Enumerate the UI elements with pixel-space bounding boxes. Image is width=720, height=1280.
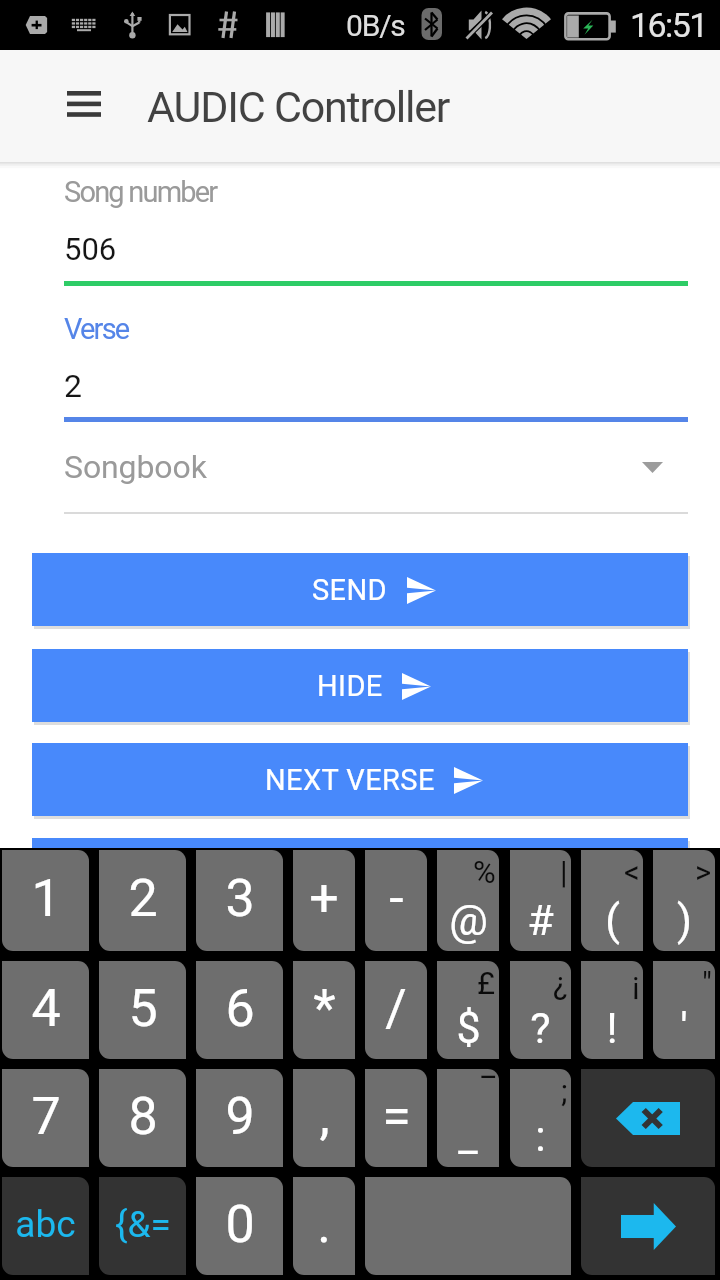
button[interactable]: /	[365, 961, 427, 1059]
staticText: ,	[319, 1086, 330, 1147]
staticText: Songbook	[64, 448, 207, 486]
button[interactable]: 4	[2, 961, 89, 1059]
button[interactable]: PREVIOUS VERSE	[32, 838, 688, 911]
staticText: %	[473, 854, 496, 890]
staticText: "	[702, 965, 712, 1001]
staticText: AUDIC Controller	[147, 82, 450, 132]
staticText: )	[677, 895, 692, 945]
staticText: #	[527, 895, 554, 945]
button[interactable]: Open navigation menu	[62, 84, 106, 128]
button[interactable]: {&=	[99, 1177, 186, 1275]
button[interactable]	[365, 1177, 571, 1275]
button[interactable]: <	[581, 850, 643, 951]
staticText: 506	[64, 231, 117, 267]
button[interactable]: Select songbook	[632, 446, 676, 490]
staticText: HIDE	[317, 669, 383, 703]
button[interactable]: 2	[99, 850, 186, 951]
button[interactable]: £	[437, 961, 499, 1059]
button[interactable]: >	[653, 850, 715, 951]
button[interactable]: ¿	[510, 961, 571, 1059]
staticText: @	[449, 895, 488, 945]
staticText: ¡	[632, 965, 640, 1001]
staticText: .	[317, 1194, 331, 1255]
staticText: Verse	[64, 312, 129, 346]
staticText: _	[458, 1111, 478, 1161]
button[interactable]: 9	[196, 1069, 283, 1167]
button[interactable]: ‾	[437, 1069, 499, 1167]
button[interactable]: =	[365, 1069, 427, 1167]
button[interactable]: 7	[2, 1069, 89, 1167]
button[interactable]: Backspace	[581, 1069, 715, 1167]
staticText: 3	[225, 868, 255, 929]
button[interactable]: "	[653, 961, 715, 1059]
staticText: 16:51	[630, 5, 707, 45]
staticText: *	[313, 978, 336, 1039]
staticText: +	[309, 868, 339, 929]
staticText: SEND	[312, 573, 388, 607]
staticText: {&=	[115, 1203, 171, 1246]
button[interactable]: 6	[196, 961, 283, 1059]
staticText: 1	[31, 868, 61, 929]
staticText: $	[456, 1003, 481, 1053]
staticText: 7	[31, 1086, 61, 1147]
button[interactable]: HIDE	[32, 649, 688, 722]
staticText: Song number	[64, 175, 217, 209]
staticText: 2	[128, 868, 158, 929]
staticText: :	[535, 1111, 546, 1161]
staticText: <	[624, 854, 640, 890]
button[interactable]: abc	[2, 1177, 89, 1275]
staticText: 4	[31, 978, 61, 1039]
button[interactable]: %	[437, 850, 499, 951]
staticText: ¿	[553, 965, 568, 1001]
button[interactable]: ;	[510, 1069, 571, 1167]
button[interactable]: 3	[196, 850, 283, 951]
button[interactable]: 1	[2, 850, 89, 951]
button[interactable]: 8	[99, 1069, 186, 1167]
button[interactable]: |	[510, 850, 571, 951]
staticText: |	[560, 854, 568, 890]
staticText: >	[695, 854, 712, 890]
button[interactable]: ,	[293, 1069, 355, 1167]
staticText: /	[385, 978, 407, 1039]
staticText: £	[477, 965, 496, 1001]
staticText: PREVIOUS VERSE	[233, 858, 468, 892]
staticText: ?	[530, 1003, 551, 1053]
staticText: (	[605, 895, 620, 945]
staticText: =	[382, 1086, 411, 1147]
staticText: 6	[225, 978, 255, 1039]
button[interactable]: -	[365, 850, 427, 951]
button[interactable]: SEND	[32, 553, 688, 626]
staticText: abc	[15, 1203, 76, 1246]
staticText: -	[389, 868, 404, 929]
button[interactable]: NEXT VERSE	[32, 743, 688, 816]
staticText: 0B/s	[346, 8, 405, 43]
button[interactable]: Enter	[581, 1177, 715, 1275]
button[interactable]: ¡	[581, 961, 643, 1059]
staticText: ;	[561, 1073, 568, 1109]
staticText: 5	[128, 978, 158, 1039]
staticText: 8	[128, 1086, 158, 1147]
button[interactable]: 5	[99, 961, 186, 1059]
staticText: ‾	[481, 1073, 496, 1109]
staticText: 9	[225, 1086, 255, 1147]
staticText: 2	[64, 367, 82, 405]
staticText: NEXT VERSE	[265, 763, 435, 797]
staticText: 0	[225, 1194, 255, 1255]
staticText: '	[680, 1003, 688, 1053]
button[interactable]: 0	[196, 1177, 283, 1275]
button[interactable]: +	[293, 850, 355, 951]
button[interactable]: .	[293, 1177, 355, 1275]
button[interactable]: *	[293, 961, 355, 1059]
staticText: !	[606, 1003, 618, 1053]
